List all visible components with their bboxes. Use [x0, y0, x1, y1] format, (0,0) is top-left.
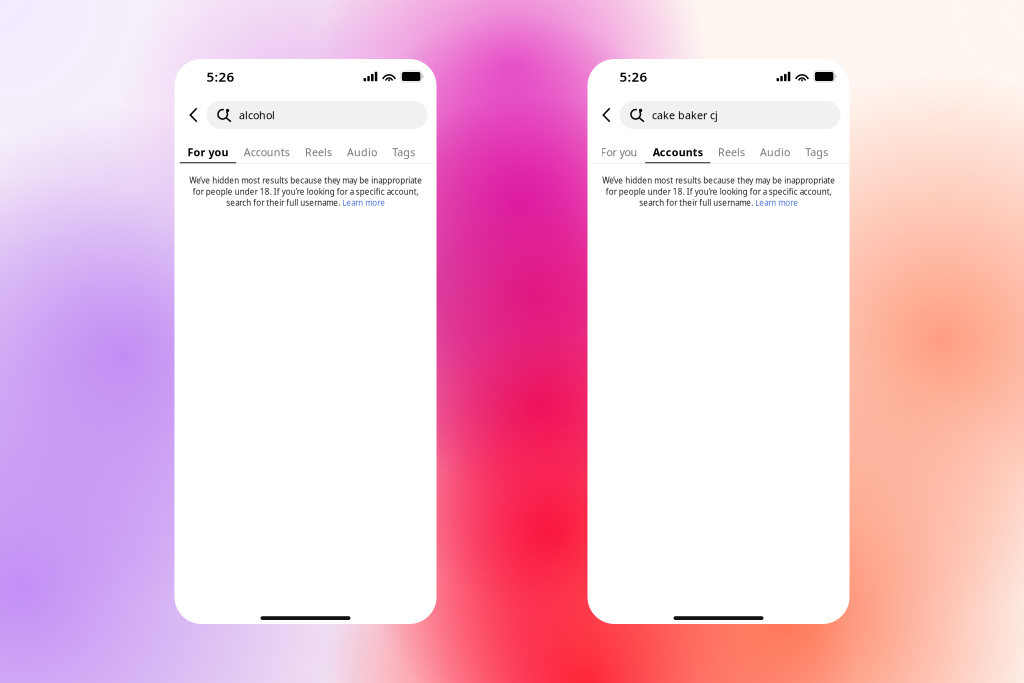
staticText: Audio	[347, 145, 377, 159]
button[interactable]: Audio	[339, 140, 385, 164]
staticText: Reels	[305, 145, 332, 159]
button[interactable]: Reels	[710, 140, 752, 164]
button[interactable]: Tags	[798, 140, 836, 164]
staticText: We’ve hidden most results because they m…	[189, 175, 422, 208]
button[interactable]: Accounts	[645, 140, 710, 164]
button[interactable]: Back	[593, 101, 619, 129]
button[interactable]: alcohol	[206, 101, 427, 129]
staticText: cake baker cj	[652, 108, 718, 122]
button[interactable]: Accounts	[236, 140, 297, 164]
staticText: We’ve hidden most results because they m…	[602, 175, 835, 208]
staticText: Tags	[805, 145, 828, 159]
staticText: Reels	[718, 145, 745, 159]
staticText: 5:26	[206, 68, 234, 85]
staticText: Accounts	[244, 145, 290, 159]
button[interactable]: Tags	[385, 140, 423, 164]
staticText: For you	[187, 145, 228, 159]
button[interactable]: Back	[180, 101, 206, 129]
button[interactable]: cake baker cj	[619, 101, 840, 129]
button[interactable]: Reels	[297, 140, 339, 164]
button[interactable]: Audio	[752, 140, 798, 164]
staticText: Tags	[392, 145, 415, 159]
staticText: 5:26	[619, 68, 647, 85]
staticText: Accounts	[653, 145, 703, 159]
staticText: Audio	[760, 145, 790, 159]
staticText: alcohol	[239, 108, 275, 122]
button[interactable]: For you	[593, 140, 645, 164]
button[interactable]: For you	[180, 140, 236, 164]
staticText: For you	[600, 145, 637, 159]
